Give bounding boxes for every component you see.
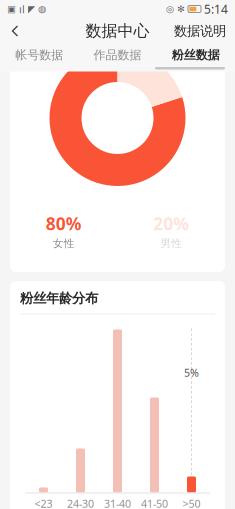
button[interactable]: 作品数据 — [78, 44, 157, 66]
button[interactable]: 粉丝数据 — [157, 44, 235, 66]
button[interactable]: 帐号数据 — [0, 44, 78, 66]
staticText: ✻ — [177, 4, 185, 14]
staticText: 24-30 — [67, 496, 94, 509]
staticText: <23 — [34, 496, 52, 509]
staticText: ▣ — [7, 4, 16, 14]
staticText: 数据说明 — [174, 23, 226, 39]
staticText: 作品数据 — [93, 48, 141, 62]
staticText: ◎ — [166, 4, 174, 14]
staticText: 20% — [153, 212, 189, 235]
staticText: 80% — [46, 212, 82, 235]
staticText: >50 — [182, 496, 200, 509]
staticText: 粉丝年龄分布 — [20, 290, 98, 306]
staticText: 31-40 — [104, 496, 131, 509]
staticText: ◍ — [38, 4, 46, 14]
button[interactable]: 数据说明 — [165, 18, 235, 44]
staticText: 5% — [184, 365, 199, 380]
staticText: 5:14 — [204, 1, 228, 17]
staticText: ◤ — [28, 4, 35, 14]
staticText: 数据中心 — [85, 21, 149, 41]
button[interactable]: Back — [0, 18, 32, 44]
staticText: 粉丝数据 — [172, 48, 220, 62]
staticText: 女性 — [53, 237, 75, 250]
staticText: 男性 — [160, 237, 182, 250]
staticText: 帐号数据 — [15, 48, 63, 62]
staticText: ıl — [19, 2, 25, 16]
staticText: 41-50 — [141, 496, 168, 509]
